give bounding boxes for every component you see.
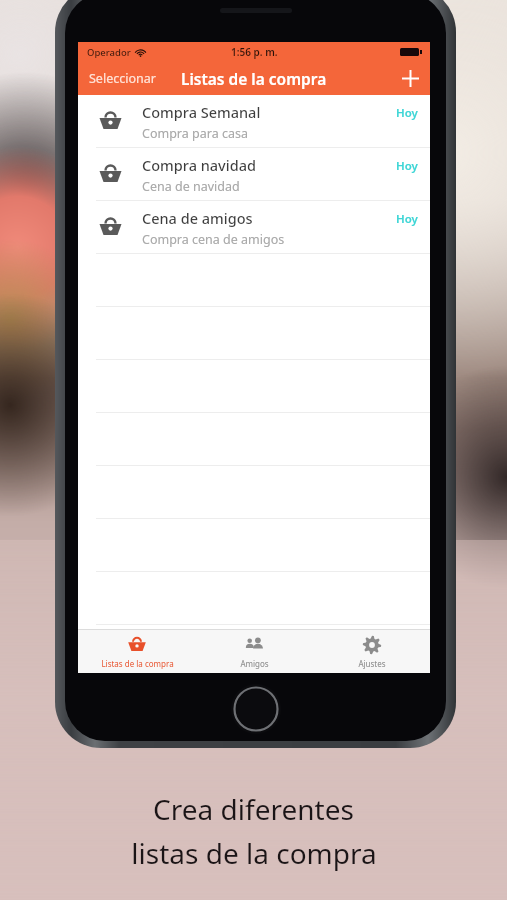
staticText: 1:56 p. m.: [231, 45, 278, 59]
staticText: Compra para casa: [142, 125, 248, 142]
staticText: Ajustes: [358, 658, 386, 669]
staticText: Compra Semanal: [142, 102, 261, 122]
staticText: Hoy: [396, 105, 418, 121]
button[interactable]: Cena de amigos: [78, 201, 430, 254]
staticText: Compra navidad: [142, 155, 256, 175]
staticText: Compra cena de amigos: [142, 231, 285, 248]
staticText: Hoy: [396, 211, 418, 227]
staticText: Seleccionar: [89, 70, 156, 87]
staticText: Crea diferentes: [153, 790, 354, 828]
staticText: Amigos: [240, 658, 269, 669]
staticText: Cena de navidad: [142, 178, 240, 195]
button[interactable]: Ajustes: [313, 630, 430, 673]
button[interactable]: Compra navidad: [78, 148, 430, 201]
staticText: listas de la compra: [131, 834, 377, 872]
button[interactable]: Seleccionar: [78, 62, 167, 95]
button[interactable]: Amigos: [196, 630, 313, 673]
staticText: Cena de amigos: [142, 208, 253, 228]
staticText: Hoy: [396, 158, 418, 174]
staticText: Operador: [87, 46, 131, 59]
staticText: Listas de la compra: [181, 68, 327, 89]
button[interactable]: Compra Semanal: [78, 95, 430, 148]
button[interactable]: Listas de la compra: [78, 630, 196, 673]
staticText: Listas de la compra: [101, 658, 174, 669]
button[interactable]: Añadir lista: [390, 62, 430, 95]
